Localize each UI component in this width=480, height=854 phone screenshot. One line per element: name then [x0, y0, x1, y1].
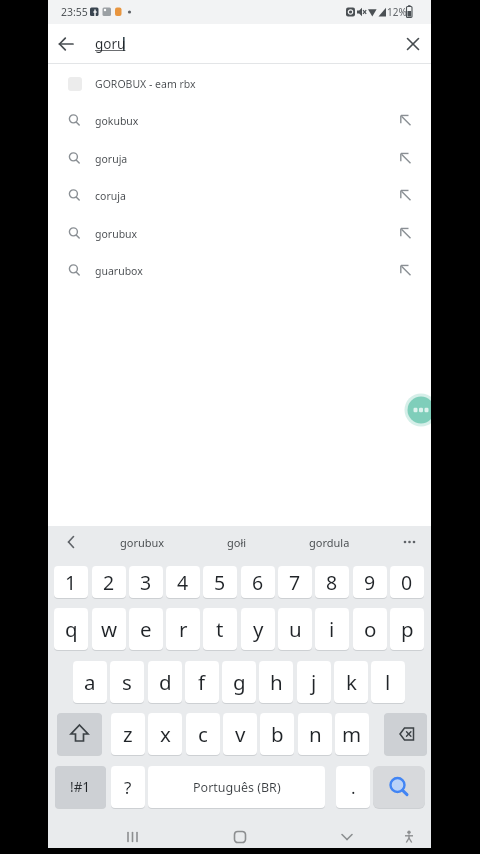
- button[interactable]: [328, 818, 366, 848]
- staticText: p: [401, 615, 414, 643]
- staticText: 3: [140, 569, 152, 596]
- button[interactable]: gołi: [190, 528, 284, 556]
- button[interactable]: gorubux: [48, 215, 431, 253]
- button[interactable]: 6: [241, 566, 275, 598]
- staticText: 8: [326, 569, 338, 596]
- button[interactable]: .: [336, 766, 370, 808]
- button[interactable]: ?: [111, 766, 145, 808]
- staticText: b: [271, 720, 284, 748]
- button[interactable]: coruja: [48, 177, 431, 215]
- button[interactable]: 7: [278, 566, 312, 598]
- button[interactable]: y: [241, 608, 275, 650]
- staticText: j: [311, 668, 317, 696]
- button[interactable]: !#1: [55, 766, 106, 808]
- button[interactable]: 9: [353, 566, 387, 598]
- staticText: 5: [214, 569, 226, 596]
- button[interactable]: gordula: [282, 528, 376, 556]
- button[interactable]: 0: [390, 566, 424, 598]
- staticText: h: [270, 668, 283, 696]
- button[interactable]: p: [390, 608, 424, 650]
- button[interactable]: h: [259, 661, 293, 703]
- button[interactable]: u: [278, 608, 312, 650]
- button[interactable]: j: [297, 661, 331, 703]
- staticText: a: [84, 668, 96, 696]
- button[interactable]: GOROBUX - eam rbx: [48, 66, 431, 102]
- button[interactable]: [391, 818, 427, 848]
- button[interactable]: [373, 766, 425, 808]
- staticText: gorubux: [95, 227, 138, 241]
- button[interactable]: o: [353, 608, 387, 650]
- staticText: 7: [289, 569, 301, 596]
- button[interactable]: 4: [166, 566, 200, 598]
- staticText: z: [123, 720, 133, 748]
- button[interactable]: 1: [54, 566, 88, 598]
- button[interactable]: q: [54, 608, 88, 650]
- staticText: q: [65, 615, 78, 643]
- staticText: GOROBUX - eam rbx: [95, 77, 196, 91]
- button[interactable]: guarubox: [48, 252, 431, 290]
- button[interactable]: goruja: [48, 140, 431, 178]
- staticText: 12%: [387, 5, 407, 19]
- staticText: v: [235, 720, 246, 748]
- staticText: k: [346, 668, 357, 696]
- button[interactable]: 2: [92, 566, 126, 598]
- button[interactable]: l: [371, 661, 405, 703]
- button[interactable]: f: [185, 661, 219, 703]
- staticText: gorubux: [120, 535, 165, 550]
- button[interactable]: s: [110, 661, 144, 703]
- staticText: guarubox: [95, 264, 143, 278]
- button[interactable]: 5: [203, 566, 237, 598]
- button[interactable]: m: [335, 713, 369, 755]
- staticText: d: [159, 668, 172, 696]
- button[interactable]: 8: [315, 566, 349, 598]
- button[interactable]: [57, 713, 102, 755]
- staticText: l: [385, 668, 391, 696]
- button[interactable]: v: [223, 713, 257, 755]
- staticText: 6: [252, 569, 264, 596]
- button[interactable]: e: [129, 608, 163, 650]
- button[interactable]: gorubux: [95, 528, 189, 556]
- button[interactable]: z: [111, 713, 145, 755]
- staticText: 4: [177, 569, 189, 596]
- button[interactable]: b: [260, 713, 294, 755]
- staticText: f: [198, 668, 206, 696]
- button[interactable]: c: [186, 713, 220, 755]
- staticText: gordula: [309, 535, 350, 550]
- button[interactable]: [114, 818, 151, 848]
- button[interactable]: i: [315, 608, 349, 650]
- button[interactable]: a: [73, 661, 107, 703]
- staticText: r: [179, 615, 188, 643]
- button[interactable]: d: [148, 661, 182, 703]
- staticText: i: [329, 615, 335, 643]
- staticText: gołi: [227, 535, 247, 550]
- staticText: Português (BR): [193, 779, 281, 796]
- staticText: 1: [65, 569, 77, 596]
- staticText: goruja: [95, 152, 128, 166]
- button[interactable]: k: [334, 661, 368, 703]
- staticText: x: [160, 720, 171, 748]
- staticText: o: [364, 615, 377, 643]
- staticText: u: [289, 615, 302, 643]
- staticText: ?: [124, 776, 132, 799]
- staticText: g: [233, 668, 246, 696]
- staticText: 2: [103, 569, 115, 596]
- button[interactable]: g: [222, 661, 256, 703]
- staticText: coruja: [95, 189, 126, 203]
- staticText: w: [101, 615, 118, 643]
- staticText: goru: [95, 35, 126, 53]
- button[interactable]: [384, 713, 427, 755]
- button[interactable]: goru: [48, 24, 431, 64]
- staticText: !#1: [70, 778, 91, 796]
- button[interactable]: Português (BR): [148, 766, 325, 808]
- button[interactable]: x: [148, 713, 182, 755]
- button[interactable]: r: [166, 608, 200, 650]
- staticText: m: [342, 720, 362, 748]
- button[interactable]: t: [203, 608, 237, 650]
- staticText: 9: [364, 569, 376, 596]
- button[interactable]: [221, 818, 259, 848]
- button[interactable]: gokubux: [48, 102, 431, 140]
- button[interactable]: n: [298, 713, 332, 755]
- staticText: gokubux: [95, 114, 139, 128]
- button[interactable]: 3: [129, 566, 163, 598]
- button[interactable]: w: [92, 608, 126, 650]
